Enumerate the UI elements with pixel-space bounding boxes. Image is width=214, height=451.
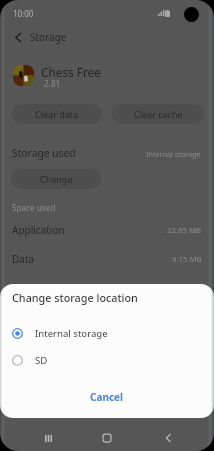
staticText: Storage (30, 30, 67, 44)
staticText: Change (40, 173, 73, 185)
button[interactable]: Recents (27, 423, 69, 451)
staticText: Data (12, 252, 35, 266)
staticText: Space used (12, 202, 56, 213)
button[interactable]: Clear data (12, 104, 102, 124)
staticText: Chess Free (41, 64, 101, 80)
staticText: 2.81 (44, 78, 61, 89)
staticText: Cancel (90, 390, 124, 404)
staticText: Application (12, 223, 65, 237)
button[interactable]: Change (11, 169, 101, 189)
staticText: Storage used (12, 146, 76, 160)
button[interactable]: Internal storage (0, 321, 214, 346)
staticText: Change storage location (12, 290, 138, 305)
staticText: SD (35, 354, 48, 367)
staticText: Internal storage (35, 327, 108, 340)
staticText: Clear data (35, 108, 79, 120)
button[interactable]: Home (86, 423, 128, 451)
staticText: 10:00 (13, 8, 34, 19)
staticText: Internal storage (146, 149, 201, 159)
button[interactable]: Cancel (76, 386, 138, 408)
staticText: Clear cache (134, 108, 183, 120)
button[interactable]: Data (0, 248, 214, 270)
button[interactable]: Clear cache (112, 104, 204, 124)
button[interactable]: Back (9, 28, 27, 46)
staticText: 9.15 MB (172, 254, 202, 265)
button[interactable]: Back (147, 423, 189, 451)
staticText: 22.65 MB (167, 225, 202, 236)
button[interactable]: SD (0, 348, 214, 373)
button[interactable]: Application (0, 219, 214, 241)
